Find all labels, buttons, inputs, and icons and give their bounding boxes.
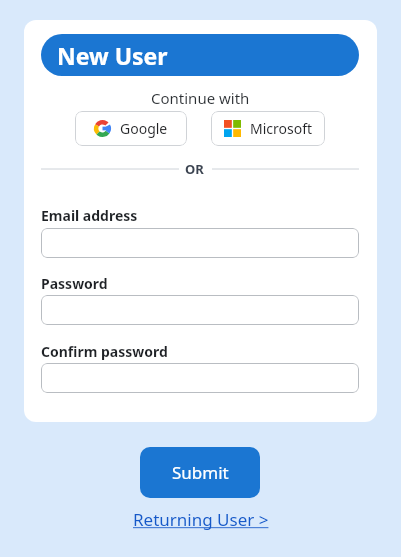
staticText: Password xyxy=(41,274,108,293)
staticText: Continue with xyxy=(151,88,250,108)
staticText: Email address xyxy=(41,206,138,225)
button[interactable]: Returning User > xyxy=(133,508,269,531)
staticText: New User xyxy=(57,40,168,71)
staticText: OR xyxy=(185,160,204,178)
staticText: Microsoft xyxy=(250,119,313,138)
button[interactable]: Email address xyxy=(41,228,359,258)
staticText: Confirm password xyxy=(41,342,168,361)
staticText: Submit xyxy=(172,461,229,484)
button[interactable]: Password xyxy=(41,295,359,325)
button[interactable]: Submit xyxy=(140,447,260,498)
button[interactable]: New User xyxy=(41,34,359,76)
staticText: Returning User > xyxy=(133,508,269,531)
button[interactable]: Continue with Microsoft xyxy=(211,111,325,146)
staticText: Google xyxy=(120,119,168,138)
button[interactable]: Confirm password xyxy=(41,363,359,393)
button[interactable]: Continue with Google xyxy=(75,111,187,146)
